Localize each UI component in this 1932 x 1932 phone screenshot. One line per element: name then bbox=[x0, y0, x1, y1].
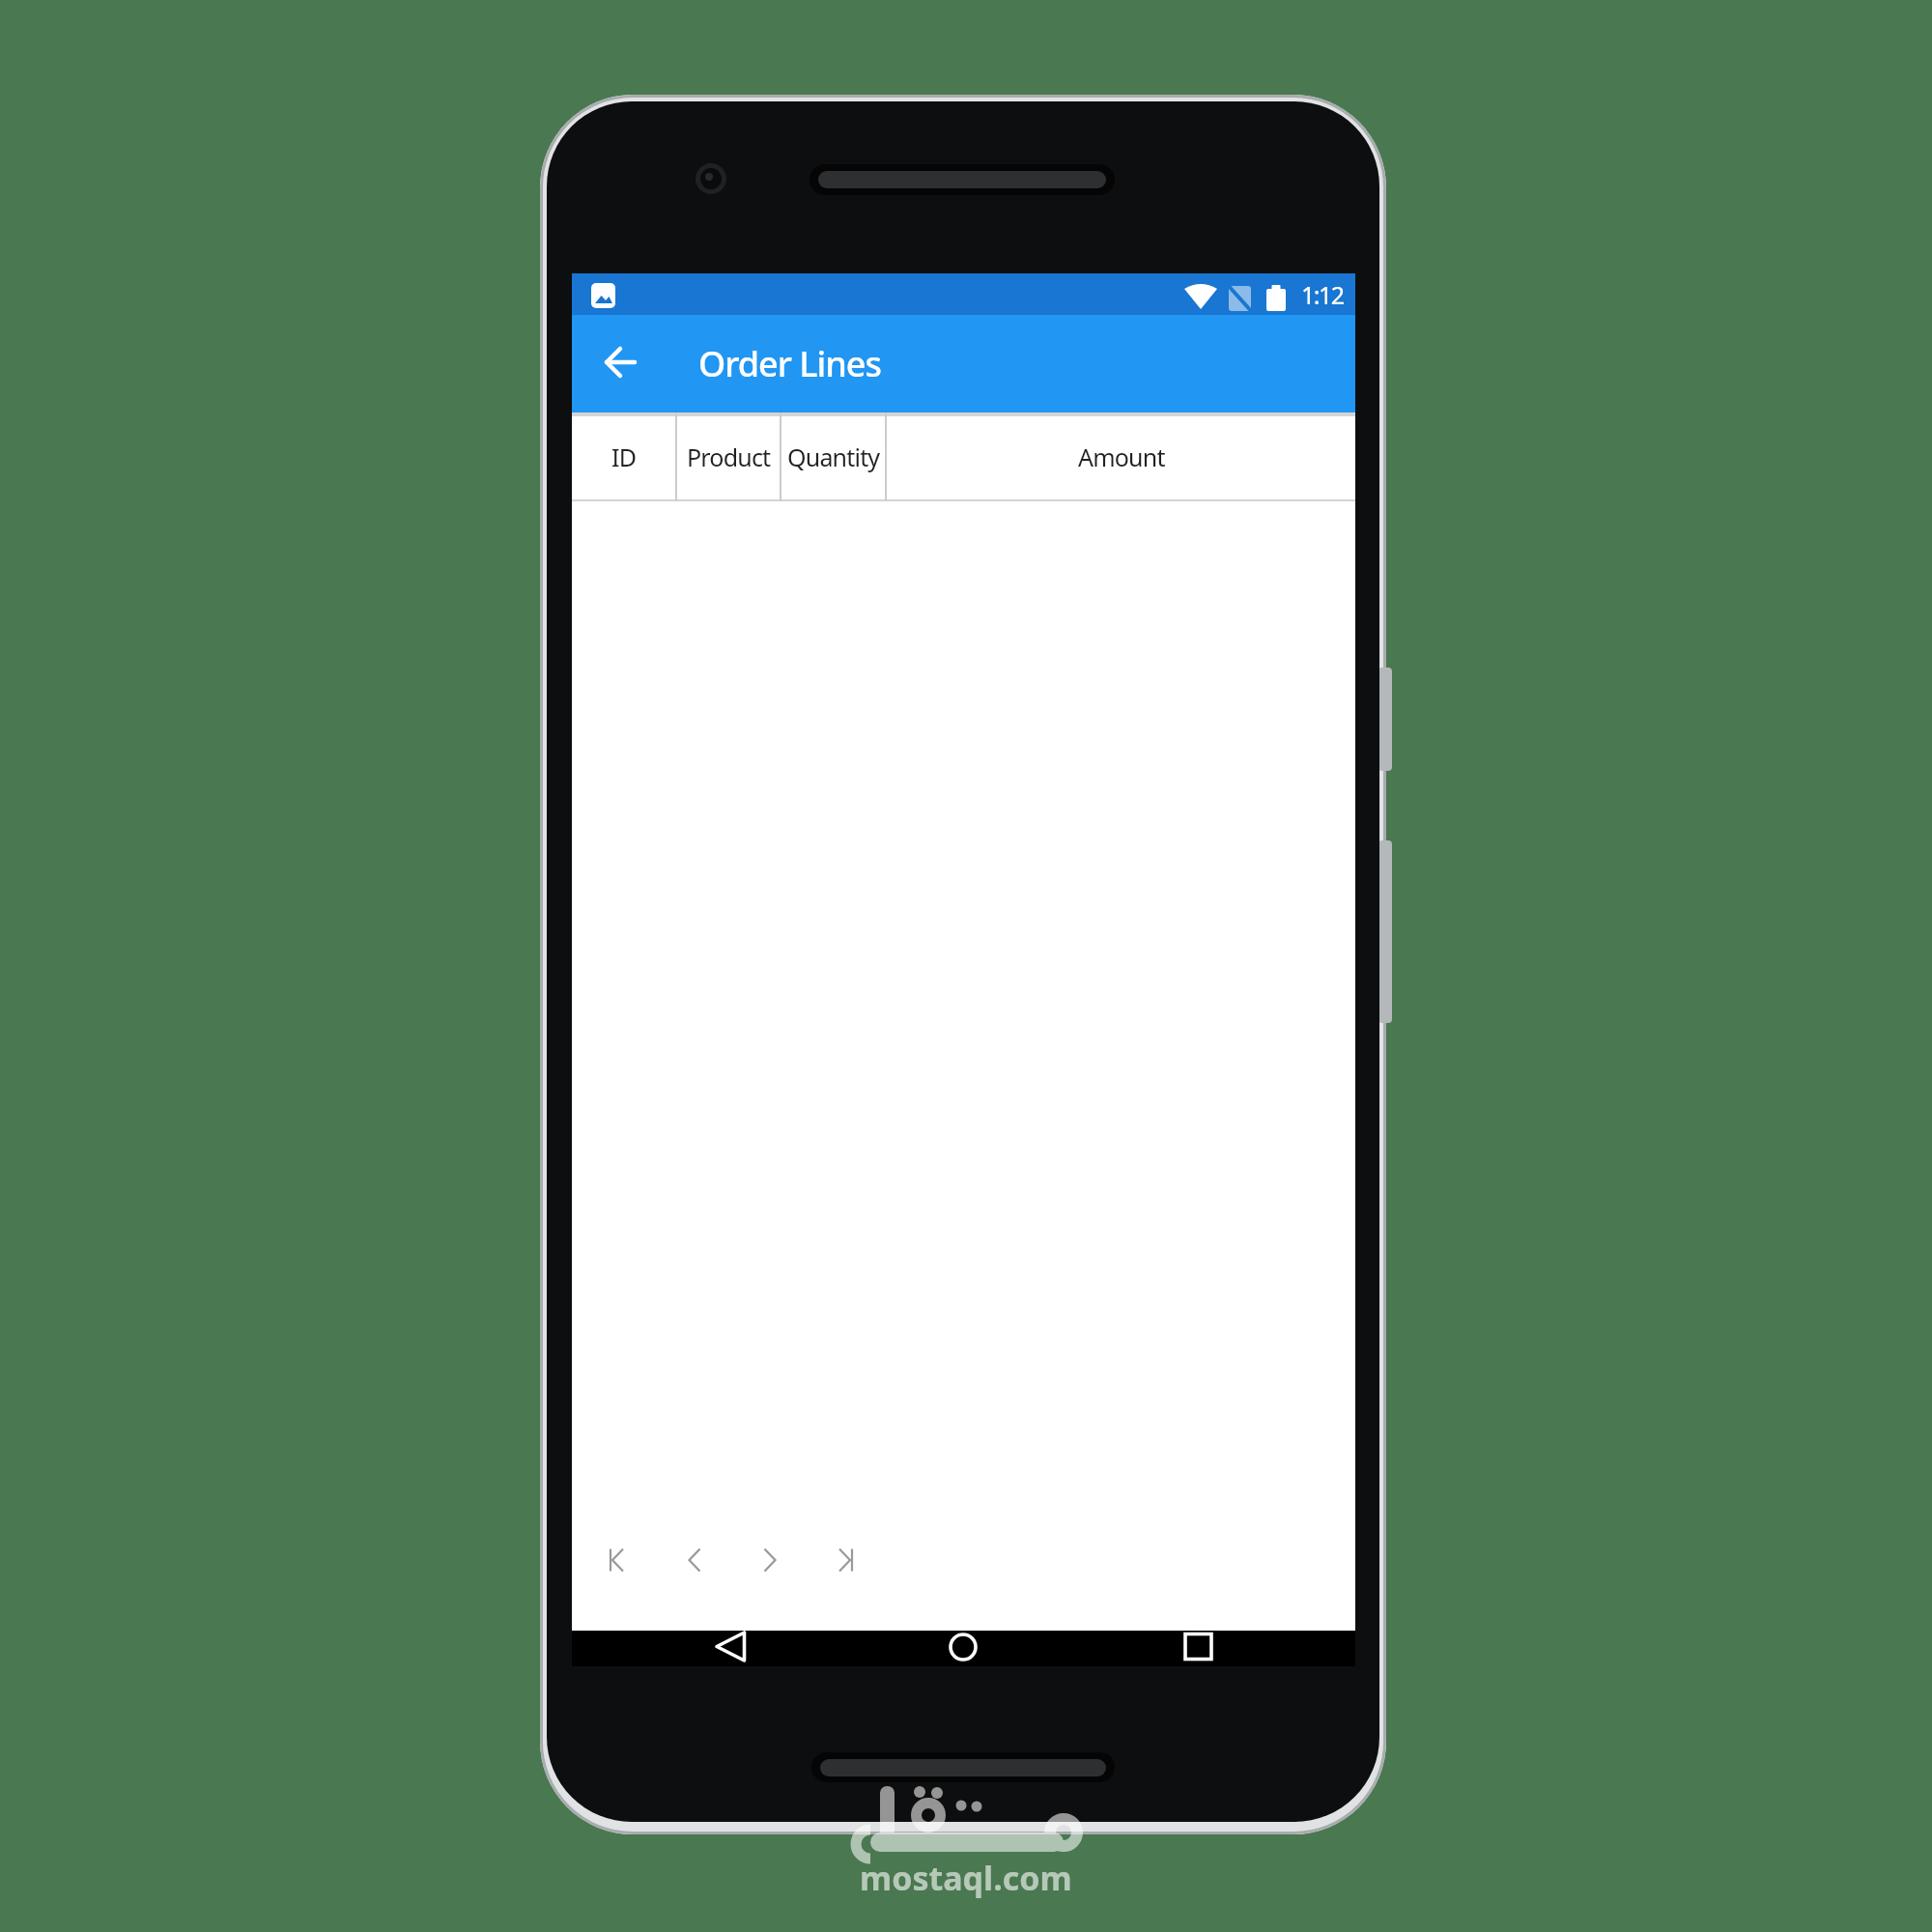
staticText: Quantity bbox=[787, 440, 880, 473]
button[interactable]: Product bbox=[677, 412, 780, 501]
button[interactable] bbox=[823, 1537, 869, 1583]
button[interactable] bbox=[747, 1537, 793, 1583]
staticText: Amount bbox=[1078, 440, 1165, 473]
button[interactable] bbox=[940, 1629, 986, 1664]
button[interactable]: ID bbox=[572, 412, 675, 501]
staticText: 1:12 bbox=[1301, 278, 1344, 311]
staticText: mostaql.com bbox=[860, 1856, 1072, 1900]
button[interactable] bbox=[593, 1537, 639, 1583]
button[interactable] bbox=[671, 1537, 718, 1583]
button[interactable] bbox=[707, 1629, 753, 1664]
button[interactable]: Amount bbox=[887, 412, 1355, 501]
button[interactable] bbox=[1175, 1629, 1221, 1664]
button[interactable]: Quantity bbox=[781, 412, 885, 501]
staticText: ID bbox=[611, 440, 637, 473]
staticText: Product bbox=[687, 440, 771, 473]
staticText: Order Lines bbox=[698, 340, 881, 387]
button[interactable] bbox=[597, 339, 643, 385]
